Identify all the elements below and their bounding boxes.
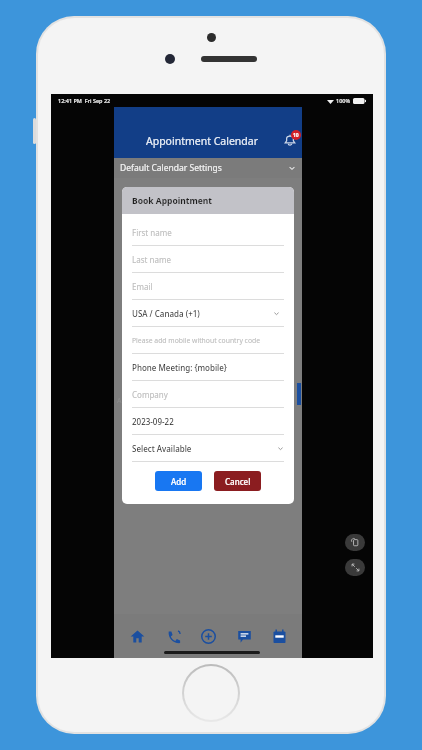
button[interactable]: Notifications — [278, 128, 302, 152]
staticText: Book Appointment — [132, 195, 213, 207]
button[interactable]: Company — [132, 381, 284, 408]
staticText: 12:41 PM Fri Sep 22 — [58, 97, 111, 104]
button[interactable]: Cancel — [214, 471, 261, 491]
staticText: 100% — [336, 97, 351, 104]
staticText: Company — [132, 389, 168, 400]
button[interactable]: Add — [155, 471, 202, 491]
staticText: USA / Canada (+1) — [132, 308, 200, 319]
button[interactable]: Screenshot — [345, 559, 365, 576]
button[interactable]: Last name — [132, 246, 284, 273]
staticText: Email — [132, 281, 153, 292]
button[interactable]: First name — [132, 219, 284, 246]
staticText: Cancel — [225, 476, 251, 487]
button[interactable]: Rotate — [345, 534, 365, 551]
button[interactable]: Email — [132, 273, 284, 300]
staticText: A — [117, 396, 122, 406]
staticText: 2023-09-22 — [132, 416, 174, 427]
button[interactable]: Select Available Slot — [132, 435, 284, 462]
staticText: First name — [132, 227, 172, 238]
staticText: Select Available Slot — [132, 443, 204, 454]
button[interactable]: Add — [193, 620, 223, 652]
staticText: Add — [171, 476, 187, 487]
staticText: Appointment Calendar — [146, 134, 259, 148]
button[interactable]: Calls — [158, 620, 188, 652]
staticText: Please add mobile without country code — [132, 336, 261, 345]
button[interactable]: Messages — [229, 620, 259, 652]
button[interactable]: Default Calendar Settings — [114, 158, 302, 178]
button[interactable]: 2023-09-22 — [132, 408, 284, 435]
staticText: Default Calendar Settings — [120, 162, 222, 174]
staticText: Phone Meeting: {mobile} — [132, 362, 227, 373]
staticText: Last name — [132, 254, 171, 265]
staticText: 10 — [293, 132, 299, 139]
button[interactable]: Calendar — [264, 620, 294, 652]
button[interactable]: Home button — [182, 664, 240, 722]
button[interactable]: Phone Meeting: {mobile} — [132, 354, 284, 381]
button[interactable]: Please add mobile without country code — [132, 327, 284, 354]
button[interactable]: USA / Canada (+1) — [132, 300, 284, 327]
button[interactable]: Home — [122, 620, 152, 652]
